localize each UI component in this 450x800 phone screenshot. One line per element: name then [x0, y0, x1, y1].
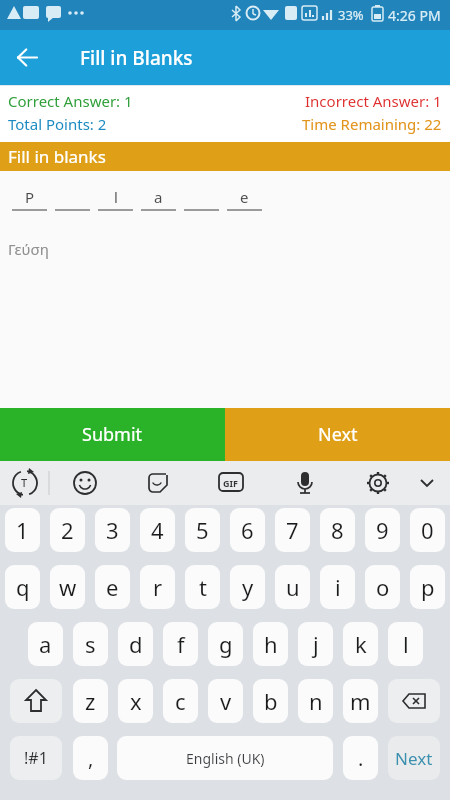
button[interactable]: p: [410, 565, 445, 609]
staticText: u: [286, 572, 300, 602]
staticText: 9: [376, 515, 389, 545]
button[interactable]: [55, 187, 90, 211]
button[interactable]: 0: [410, 508, 445, 552]
staticText: 0: [421, 515, 434, 545]
button[interactable]: n: [298, 679, 333, 723]
button[interactable]: m: [343, 679, 378, 723]
staticText: p: [421, 572, 435, 602]
button[interactable]: r: [140, 565, 175, 609]
button[interactable]: [0, 30, 55, 85]
button[interactable]: x: [118, 679, 153, 723]
staticText: 6: [241, 515, 254, 545]
staticText: 33%: [338, 6, 364, 24]
button[interactable]: Next: [388, 736, 440, 780]
staticText: y: [242, 572, 254, 602]
button[interactable]: 3: [95, 508, 130, 552]
button[interactable]: i: [320, 565, 355, 609]
button[interactable]: 7: [275, 508, 310, 552]
button[interactable]: z: [73, 679, 108, 723]
staticText: r: [153, 572, 163, 602]
staticText: Incorrect Answer: 1: [305, 91, 442, 111]
button[interactable]: h: [253, 622, 288, 666]
staticText: d: [129, 629, 143, 659]
button[interactable]: d: [118, 622, 153, 666]
button[interactable]: [184, 187, 219, 211]
button[interactable]: v: [208, 679, 243, 723]
button[interactable]: 8: [320, 508, 355, 552]
staticText: Time Remaining: 22: [302, 114, 442, 134]
button[interactable]: a: [141, 187, 176, 211]
button[interactable]: e: [227, 187, 262, 211]
button[interactable]: 2: [50, 508, 85, 552]
staticText: 1: [16, 515, 29, 545]
staticText: a: [154, 187, 163, 209]
button[interactable]: k: [343, 622, 378, 666]
staticText: T: [21, 475, 28, 490]
button[interactable]: q: [5, 565, 40, 609]
button[interactable]: .: [343, 736, 378, 780]
staticText: c: [175, 686, 186, 716]
staticText: n: [309, 686, 323, 716]
button[interactable]: 6: [230, 508, 265, 552]
button[interactable]: a: [28, 622, 63, 666]
staticText: Correct Answer: 1: [8, 91, 133, 111]
button[interactable]: j: [298, 622, 333, 666]
button[interactable]: y: [230, 565, 265, 609]
staticText: x: [130, 686, 142, 716]
staticText: !#1: [24, 747, 48, 769]
staticText: 7: [286, 515, 299, 545]
button[interactable]: ,: [73, 736, 108, 780]
button[interactable]: !#1: [10, 736, 62, 780]
staticText: 2: [61, 515, 74, 545]
button[interactable]: 1: [5, 508, 40, 552]
staticText: w: [59, 572, 77, 602]
staticText: m: [350, 686, 371, 716]
button[interactable]: 9: [365, 508, 400, 552]
button[interactable]: g: [208, 622, 243, 666]
button[interactable]: u: [275, 565, 310, 609]
button[interactable]: c: [163, 679, 198, 723]
staticText: 4:26 PM: [388, 6, 441, 25]
button[interactable]: Next: [225, 408, 450, 461]
button[interactable]: [388, 679, 440, 723]
button[interactable]: 4: [140, 508, 175, 552]
staticText: j: [313, 629, 319, 659]
staticText: e: [106, 572, 119, 602]
staticText: .: [358, 745, 364, 772]
staticText: f: [177, 629, 185, 659]
button[interactable]: English (UK): [117, 736, 333, 780]
button[interactable]: t: [185, 565, 220, 609]
staticText: Fill in blanks: [8, 145, 106, 168]
staticText: q: [16, 572, 30, 602]
button[interactable]: e: [95, 565, 130, 609]
staticText: v: [220, 686, 232, 716]
staticText: Γεύση: [8, 239, 49, 259]
staticText: Next: [318, 422, 358, 447]
staticText: GIF: [223, 477, 238, 489]
staticText: Fill in Blanks: [80, 45, 193, 71]
staticText: 3: [106, 515, 119, 545]
button[interactable]: [10, 679, 62, 723]
staticText: e: [240, 187, 249, 209]
button[interactable]: l: [98, 187, 133, 211]
button[interactable]: s: [73, 622, 108, 666]
button[interactable]: b: [253, 679, 288, 723]
staticText: t: [199, 572, 207, 602]
button[interactable]: f: [163, 622, 198, 666]
staticText: s: [85, 629, 96, 659]
staticText: 4: [151, 515, 164, 545]
button[interactable]: Submit: [0, 408, 225, 461]
staticText: P: [25, 187, 35, 209]
button[interactable]: w: [50, 565, 85, 609]
staticText: Total Points: 2: [8, 114, 107, 134]
button[interactable]: P: [12, 187, 47, 211]
staticText: a: [39, 629, 52, 659]
staticText: o: [376, 572, 390, 602]
button[interactable]: l: [388, 622, 423, 666]
staticText: 5: [196, 515, 209, 545]
button[interactable]: 5: [185, 508, 220, 552]
staticText: z: [85, 686, 96, 716]
staticText: l: [403, 629, 409, 659]
button[interactable]: o: [365, 565, 400, 609]
staticText: English (UK): [186, 749, 265, 768]
